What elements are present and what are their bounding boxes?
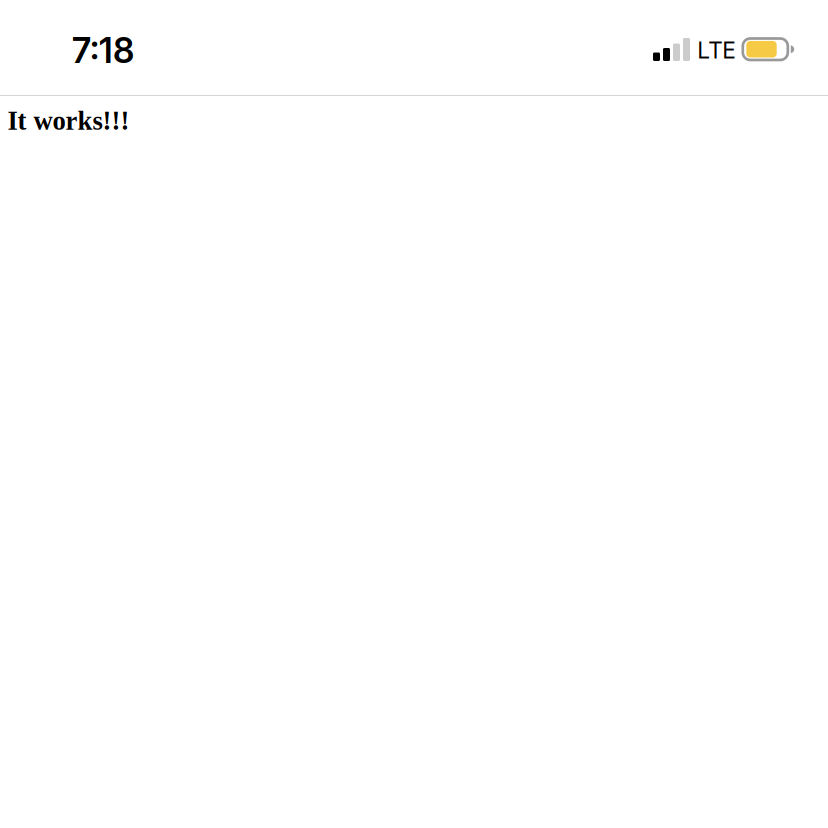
staticText: LTE: [697, 37, 736, 64]
staticText: 7:18: [72, 29, 134, 71]
staticText: It works!!!: [7, 106, 129, 135]
